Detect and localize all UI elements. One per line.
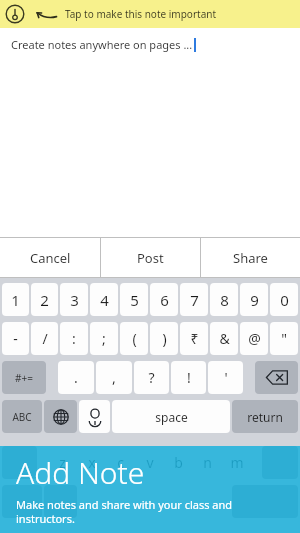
staticText: 3: [70, 290, 79, 310]
button[interactable]: /: [31, 322, 58, 355]
staticText: Add Note: [16, 452, 145, 493]
staticText: 5: [130, 290, 139, 310]
staticText: (: [132, 329, 137, 348]
button[interactable]: space: [112, 400, 230, 433]
button[interactable]: ABC: [2, 400, 42, 433]
staticText: &: [219, 329, 230, 348]
staticText: z: [59, 453, 66, 472]
staticText: Cancel: [30, 249, 71, 267]
staticText: m: [230, 453, 244, 472]
button[interactable]: Tap to make this note important: [0, 0, 300, 28]
staticText: ABC: [12, 410, 32, 424]
staticText: @: [248, 329, 261, 348]
button[interactable]: (: [120, 322, 148, 355]
button[interactable]: -: [2, 322, 29, 355]
button[interactable]: c: [107, 446, 134, 479]
staticText: 8: [220, 290, 229, 310]
button[interactable]: [2, 485, 42, 518]
staticText: /: [42, 329, 48, 348]
button[interactable]: 0: [270, 283, 298, 316]
button[interactable]: [112, 485, 230, 518]
button[interactable]: 2: [31, 283, 58, 316]
button[interactable]: .: [58, 361, 94, 394]
staticText: return: [247, 409, 283, 425]
button[interactable]: !: [171, 361, 206, 394]
staticText: 2: [40, 290, 49, 310]
staticText: ;: [102, 329, 106, 348]
staticText: Tap to make this note important: [65, 7, 217, 21]
staticText: ₹: [190, 329, 199, 348]
staticText: .: [74, 368, 78, 387]
staticText: space: [155, 409, 188, 425]
button[interactable]: Share: [201, 238, 300, 277]
button[interactable]: @: [240, 322, 268, 355]
staticText: x: [88, 453, 96, 472]
staticText: :: [72, 329, 76, 348]
button[interactable]: Add Note: [0, 446, 300, 533]
staticText: 6: [160, 290, 169, 310]
staticText: !: [187, 368, 191, 387]
staticText: Create notes anywhere on pages ...: [11, 37, 193, 52]
button[interactable]: [79, 485, 110, 518]
button[interactable]: 8: [210, 283, 238, 316]
button[interactable]: Change keyboard language: [44, 400, 77, 433]
button[interactable]: ': [208, 361, 243, 394]
staticText: ): [162, 329, 167, 348]
button[interactable]: Backspace: [255, 361, 298, 394]
button[interactable]: 9: [240, 283, 268, 316]
button[interactable]: Cancel: [0, 238, 100, 277]
button[interactable]: x: [78, 446, 105, 479]
staticText: 1: [11, 290, 20, 310]
staticText: c: [117, 453, 124, 472]
button[interactable]: Post: [101, 238, 200, 277]
button[interactable]: #+=: [2, 361, 46, 394]
button[interactable]: :: [60, 322, 88, 355]
button[interactable]: Voice input: [79, 400, 110, 433]
button[interactable]: 1: [2, 283, 29, 316]
staticText: Share: [233, 249, 268, 267]
button[interactable]: ?: [134, 361, 169, 394]
button[interactable]: ": [270, 322, 298, 355]
button[interactable]: Create notes anywhere on pages ...: [0, 28, 300, 237]
staticText: Post: [137, 249, 164, 267]
staticText: ,: [112, 368, 116, 387]
button[interactable]: z: [49, 446, 76, 479]
button[interactable]: ,: [96, 361, 132, 394]
staticText: Make notes and share with your class and…: [16, 497, 233, 526]
button[interactable]: 3: [60, 283, 88, 316]
button[interactable]: return: [232, 400, 298, 433]
button[interactable]: ): [150, 322, 178, 355]
button[interactable]: 5: [120, 283, 148, 316]
staticText: 4: [100, 290, 109, 310]
button[interactable]: 7: [180, 283, 208, 316]
staticText: v: [146, 453, 154, 472]
button[interactable]: [44, 485, 77, 518]
button[interactable]: b: [165, 446, 192, 479]
staticText: 9: [250, 290, 259, 310]
staticText: 0: [280, 290, 289, 310]
staticText: #+=: [15, 371, 33, 385]
button[interactable]: v: [136, 446, 163, 479]
button[interactable]: &: [210, 322, 238, 355]
staticText: ?: [148, 368, 155, 387]
button[interactable]: [2, 446, 37, 479]
button[interactable]: 6: [150, 283, 178, 316]
staticText: b: [174, 453, 183, 472]
staticText: n: [203, 453, 212, 472]
staticText: 7: [190, 290, 199, 310]
staticText: ': [224, 368, 228, 387]
staticText: -: [13, 329, 18, 348]
staticText: ": [281, 329, 287, 348]
button[interactable]: ₹: [180, 322, 208, 355]
button[interactable]: m: [223, 446, 250, 479]
button[interactable]: 4: [90, 283, 118, 316]
button[interactable]: ;: [90, 322, 118, 355]
